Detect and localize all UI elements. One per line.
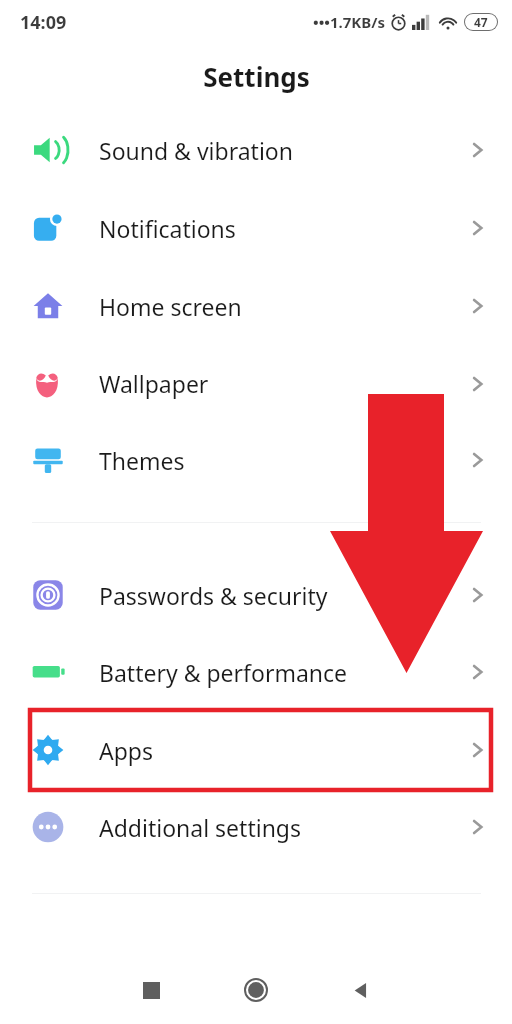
staticText: Wallpaper bbox=[99, 368, 209, 399]
button[interactable]: Additional settings bbox=[0, 789, 512, 865]
button[interactable]: Sound & vibration bbox=[0, 112, 512, 188]
staticText: Sound & vibration bbox=[99, 135, 293, 166]
button[interactable]: Back bbox=[342, 971, 380, 1009]
button[interactable]: Home screen bbox=[0, 268, 512, 344]
button[interactable]: Battery & performance bbox=[0, 634, 512, 710]
button[interactable]: Passwords & security bbox=[0, 557, 512, 633]
staticText: Notifications bbox=[99, 213, 236, 244]
button[interactable]: Recent apps bbox=[132, 971, 170, 1009]
button[interactable]: Wallpaper bbox=[0, 345, 512, 421]
staticText: Battery & performance bbox=[99, 657, 348, 688]
staticText: Themes bbox=[99, 445, 185, 476]
staticText: Additional settings bbox=[99, 812, 302, 843]
button[interactable]: Themes bbox=[0, 422, 512, 498]
staticText: Passwords & security bbox=[99, 580, 328, 611]
staticText: Settings bbox=[203, 59, 310, 94]
staticText: 47 bbox=[474, 14, 488, 30]
button[interactable]: Apps bbox=[0, 712, 512, 788]
staticText: Home screen bbox=[99, 291, 242, 322]
staticText: Apps bbox=[99, 735, 154, 766]
button[interactable]: Home bbox=[235, 969, 277, 1011]
staticText: •••1.7KB/s bbox=[313, 12, 385, 32]
staticText: 14:09 bbox=[20, 10, 67, 35]
button[interactable]: Notifications bbox=[0, 190, 512, 266]
